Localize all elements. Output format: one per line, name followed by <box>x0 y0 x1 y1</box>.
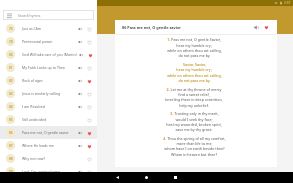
staticText: Jesus is tenderly calling <box>22 91 61 96</box>
button[interactable]: 83 <box>0 87 97 100</box>
staticText: Where He leads me <box>22 143 54 148</box>
staticText: 89 <box>9 170 13 174</box>
staticText: 76 <box>9 27 13 31</box>
staticText: 86 Pass me not, O gentle savior <box>122 25 181 30</box>
button[interactable]: 88 <box>0 152 97 165</box>
staticText: 81 <box>9 66 13 70</box>
button[interactable]: Recents <box>170 172 181 183</box>
button[interactable]: Play <box>76 142 84 150</box>
staticText: Still undecided <box>22 117 47 122</box>
staticText: 1. Pass me not, O gentle Savior, <box>167 37 221 42</box>
staticText: help my unbelief. <box>179 103 209 108</box>
button[interactable]: 87 <box>0 139 97 152</box>
staticText: 83 <box>9 92 13 96</box>
staticText: 80 <box>9 53 13 57</box>
staticText: save me by thy grace. <box>175 127 213 132</box>
button[interactable]: Play <box>76 64 84 72</box>
staticText: Pass me not, O gentle savior <box>22 130 69 135</box>
staticText: 84 <box>9 105 13 109</box>
staticText: while on others thou art calling, <box>167 48 222 53</box>
button[interactable]: Favorite <box>85 116 93 124</box>
button[interactable]: Favorite <box>85 38 93 46</box>
staticText: more than life to me, <box>176 141 213 146</box>
button[interactable]: Favorite <box>85 77 93 85</box>
button[interactable]: Favorite <box>85 155 93 163</box>
staticText: Whom in heaven but thee? <box>171 152 217 157</box>
button[interactable]: Play <box>77 51 85 59</box>
button[interactable]: Favorite <box>85 103 93 111</box>
staticText: 2. Let me at thy throne of mercy <box>166 87 222 92</box>
staticText: Pentecostal power <box>22 39 53 44</box>
staticText: Search hymns <box>18 13 41 18</box>
button[interactable]: 81 <box>0 61 97 74</box>
button[interactable]: Favorite <box>85 168 93 176</box>
button[interactable]: Favorite <box>85 25 93 33</box>
button[interactable]: Play <box>76 90 84 98</box>
button[interactable]: Play <box>76 25 84 33</box>
button[interactable]: 80 <box>0 48 97 61</box>
button[interactable]: Play <box>76 168 84 176</box>
staticText: Just as I Am <box>22 26 42 31</box>
staticText: Savior, Savior, <box>183 62 206 67</box>
button[interactable]: Play <box>76 38 84 46</box>
button[interactable]: 76 <box>0 22 97 35</box>
staticText: hear my humble cry; <box>176 43 212 48</box>
button[interactable]: Play audio <box>252 23 260 31</box>
button[interactable]: Play <box>76 77 84 85</box>
staticText: Lord, I'm coming home <box>22 169 61 174</box>
staticText: find a sweet relief, <box>178 92 210 97</box>
staticText: do not pass me by. <box>178 78 211 83</box>
staticText: while on others thou art calling, <box>167 73 222 78</box>
staticText: 78 <box>9 40 13 44</box>
staticText: 87 <box>9 144 13 148</box>
staticText: would I seek thy face; <box>175 117 213 122</box>
button[interactable]: Home <box>141 172 152 183</box>
button[interactable]: Play <box>76 103 84 111</box>
button[interactable]: Back <box>112 172 123 183</box>
button[interactable]: 82 <box>0 74 97 87</box>
button[interactable]: 84 <box>0 100 97 113</box>
button[interactable]: Search hymns <box>3 10 94 20</box>
button[interactable]: Favorite <box>85 90 93 98</box>
staticText: 3. Trusting only in thy merit, <box>170 111 219 116</box>
button[interactable]: Favorite <box>85 142 93 150</box>
button[interactable]: Favorite <box>85 64 93 72</box>
staticText: I am Resolved <box>22 104 45 109</box>
staticText: heal my wounded, broken spirit, <box>166 122 222 127</box>
button[interactable]: 85 <box>0 113 97 126</box>
staticText: 86 <box>9 131 13 135</box>
staticText: whom have I on earth beside thee? <box>164 146 225 151</box>
button[interactable]: Favorite <box>262 23 270 31</box>
staticText: 2:57 <box>284 1 291 5</box>
button[interactable]: Favorite <box>86 51 94 59</box>
staticText: 82 <box>9 79 13 83</box>
staticText: kneeling there in deep contrition, <box>165 97 223 102</box>
staticText: God Will take care of you (Martin) <box>22 52 77 57</box>
button[interactable]: 89 <box>0 165 97 178</box>
staticText: Rock of ages <box>22 78 43 83</box>
staticText: hear my humble cry; <box>176 67 212 72</box>
staticText: 88 <box>9 157 13 161</box>
button[interactable]: Favorite <box>85 129 93 137</box>
button[interactable]: Play <box>76 129 84 137</box>
staticText: do not pass me by. <box>178 53 211 58</box>
button[interactable]: 86 <box>0 126 97 139</box>
button[interactable]: 78 <box>0 35 97 48</box>
staticText: My Faith Looks up to Thee <box>22 65 65 70</box>
staticText: Why not now? <box>22 156 46 161</box>
staticText: 85 <box>9 118 13 122</box>
staticText: 4. Thou the spring of all my comfort, <box>163 136 226 141</box>
